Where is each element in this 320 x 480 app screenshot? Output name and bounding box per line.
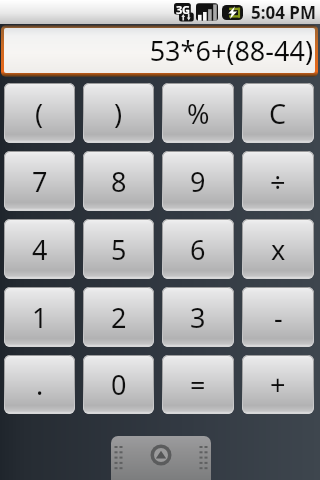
staticText: - (274, 299, 283, 336)
button[interactable]: 8 (83, 151, 154, 211)
button[interactable]: x (242, 219, 314, 279)
button[interactable]: = (162, 355, 234, 414)
button[interactable]: 1 (4, 287, 75, 347)
staticText: 53*6+(88-44) (149, 32, 313, 69)
staticText: 3G (176, 2, 190, 17)
staticText: x (271, 231, 286, 268)
button[interactable]: Open applications drawer (111, 436, 211, 480)
staticText: 1 (32, 299, 48, 336)
staticText: 7 (32, 163, 48, 200)
staticText: = (190, 366, 206, 403)
button[interactable]: ) (83, 83, 154, 143)
button[interactable]: 6 (162, 219, 234, 279)
staticText: 3 (190, 299, 206, 336)
staticText: 4 (32, 231, 48, 268)
staticText: 8 (111, 163, 127, 200)
staticText: 6 (190, 231, 206, 268)
button[interactable]: 3 (162, 287, 234, 347)
staticText: 0 (111, 366, 127, 403)
button[interactable]: - (242, 287, 314, 347)
staticText: 5:04 PM (251, 1, 316, 24)
button[interactable]: . (4, 355, 75, 414)
button[interactable]: C (242, 83, 314, 143)
button[interactable]: 9 (162, 151, 234, 211)
button[interactable]: 2 (83, 287, 154, 347)
button[interactable]: 5 (83, 219, 154, 279)
staticText: . (36, 366, 44, 403)
staticText: ( (35, 95, 44, 132)
button[interactable]: 0 (83, 355, 154, 414)
staticText: % (187, 95, 210, 132)
button[interactable]: + (242, 355, 314, 414)
staticText: ÷ (270, 163, 286, 200)
button[interactable]: ÷ (242, 151, 314, 211)
staticText: 5 (111, 231, 127, 268)
button[interactable]: 7 (4, 151, 75, 211)
staticText: 2 (111, 299, 127, 336)
staticText: ) (114, 95, 123, 132)
staticText: C (269, 95, 287, 132)
staticText: 9 (190, 163, 206, 200)
staticText: + (270, 366, 286, 403)
button[interactable]: % (162, 83, 234, 143)
button[interactable]: 4 (4, 219, 75, 279)
button[interactable]: ( (4, 83, 75, 143)
